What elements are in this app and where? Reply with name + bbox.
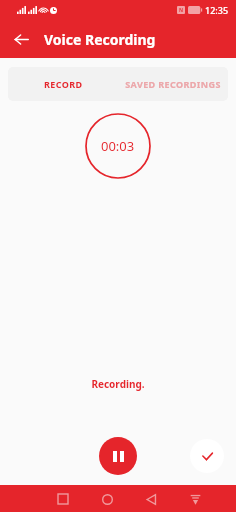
button[interactable]: Back: [140, 488, 162, 510]
button[interactable]: Hide keyboard: [184, 488, 206, 510]
staticText: RECORD: [44, 78, 83, 90]
staticText: Voice Recording: [44, 30, 156, 49]
staticText: N: [179, 7, 184, 14]
staticText: 00:03: [101, 137, 135, 155]
button[interactable]: Save recording: [190, 439, 224, 473]
button[interactable]: SAVED RECORDINGS: [118, 67, 228, 101]
button[interactable]: Home: [96, 488, 118, 510]
staticText: 12:35: [205, 4, 229, 16]
staticText: SAVED RECORDINGS: [125, 78, 221, 90]
button[interactable]: Pause recording: [99, 437, 137, 475]
button[interactable]: Back: [7, 25, 35, 53]
button[interactable]: RECORD: [8, 67, 118, 101]
button[interactable]: Recent apps: [52, 488, 74, 510]
staticText: Recording.: [0, 377, 236, 391]
